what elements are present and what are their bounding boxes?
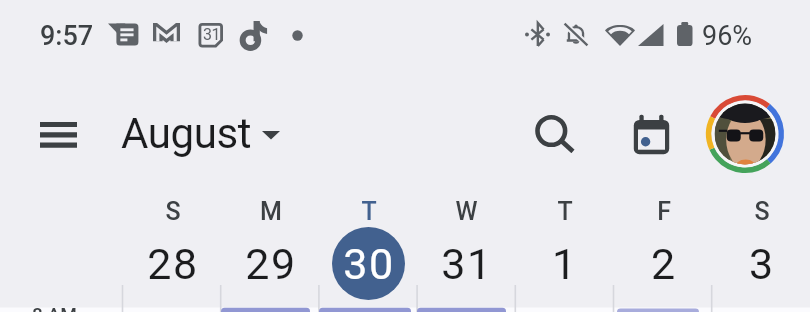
button[interactable]: S [712,197,810,307]
button[interactable]: Account profile [706,95,784,173]
staticText: M [260,197,282,226]
staticText: 96% [702,20,753,52]
button[interactable]: W [417,197,515,307]
staticText: 3 [749,239,775,289]
staticText: S [165,197,181,226]
button[interactable]: Search [524,105,580,161]
staticText: T [361,197,377,226]
staticText: August [121,109,252,158]
button[interactable]: Open navigation drawer [20,104,78,162]
staticText: 8 AM [32,303,77,312]
staticText: W [455,197,478,226]
staticText: 31 [441,239,493,289]
button[interactable]: T [515,197,613,307]
button[interactable]: F [614,197,712,307]
button[interactable]: Jump to today [624,105,680,161]
staticText: T [557,197,573,226]
staticText: S [754,197,770,226]
staticText: 9:57 [40,20,94,52]
staticText: 31 [203,25,221,44]
staticText: 28 [147,239,199,289]
button[interactable]: M [221,197,319,307]
button[interactable]: August [121,107,280,160]
staticText: F [657,197,671,226]
staticText: 29 [245,239,297,289]
button[interactable]: T [319,197,417,307]
staticText: 1 [552,239,578,289]
staticText: 30 [343,239,395,289]
staticText: 2 [651,239,677,289]
button[interactable]: S [123,197,221,307]
